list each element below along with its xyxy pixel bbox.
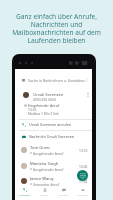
button[interactable]: Janice Wang bbox=[21, 174, 88, 188]
staticText: Verpasster Anruf bbox=[33, 182, 60, 186]
staticText: 11:02 bbox=[79, 179, 88, 183]
staticText: Ausgehender Anruf bbox=[33, 167, 64, 171]
staticText: Eingehender Anruf bbox=[28, 103, 60, 108]
other: Menü bbox=[22, 79, 25, 81]
staticText: Suche in Nachrichten u. Kontakten bbox=[28, 78, 85, 83]
button[interactable]: Tom Greer bbox=[21, 143, 88, 157]
staticText: Ursuli Sorensen bbox=[33, 92, 64, 98]
staticText: 13:10 bbox=[79, 148, 88, 152]
button[interactable]: Ursuli Sorensen anrufen bbox=[22, 119, 92, 130]
button[interactable]: Menü bbox=[15, 74, 92, 86]
staticText: Ausgehender Anruf bbox=[33, 151, 64, 155]
button[interactable]: Voicemail bbox=[73, 186, 92, 200]
other: Mehr Optionen bbox=[87, 92, 89, 97]
staticText: Zuletzt bbox=[40, 193, 49, 196]
staticText: Tom Greer bbox=[30, 145, 51, 151]
staticText: Nachricht Ursuli Sorensen bbox=[29, 134, 75, 139]
staticText: 12:45 bbox=[79, 164, 88, 168]
staticText: Janice Wang bbox=[30, 176, 54, 182]
staticText: 13:53 bbox=[28, 107, 37, 111]
staticText: Favoriten bbox=[19, 193, 31, 196]
button[interactable]: Manisha Singh bbox=[21, 159, 88, 173]
staticText: (030) 456 4034 bbox=[33, 97, 56, 101]
button[interactable]: Zuletzt bbox=[35, 186, 54, 200]
button[interactable]: Nachricht Ursuli Sorensen bbox=[22, 131, 92, 142]
staticText: Manisha Singh bbox=[30, 161, 59, 167]
button[interactable]: Kontakte bbox=[54, 186, 73, 200]
staticText: Ganz einfach über Anrufe, Nachrichten un… bbox=[3, 12, 110, 45]
staticText: Mailbox 1 Min 3 Sek bbox=[28, 111, 59, 115]
staticText: Kontakte bbox=[58, 193, 69, 196]
staticText: Voicemail bbox=[77, 193, 89, 196]
staticText: Ursuli Sorensen anrufen bbox=[29, 122, 72, 127]
button[interactable]: Wähltasten öffnen bbox=[77, 170, 88, 181]
button[interactable]: Favoriten bbox=[15, 186, 35, 200]
